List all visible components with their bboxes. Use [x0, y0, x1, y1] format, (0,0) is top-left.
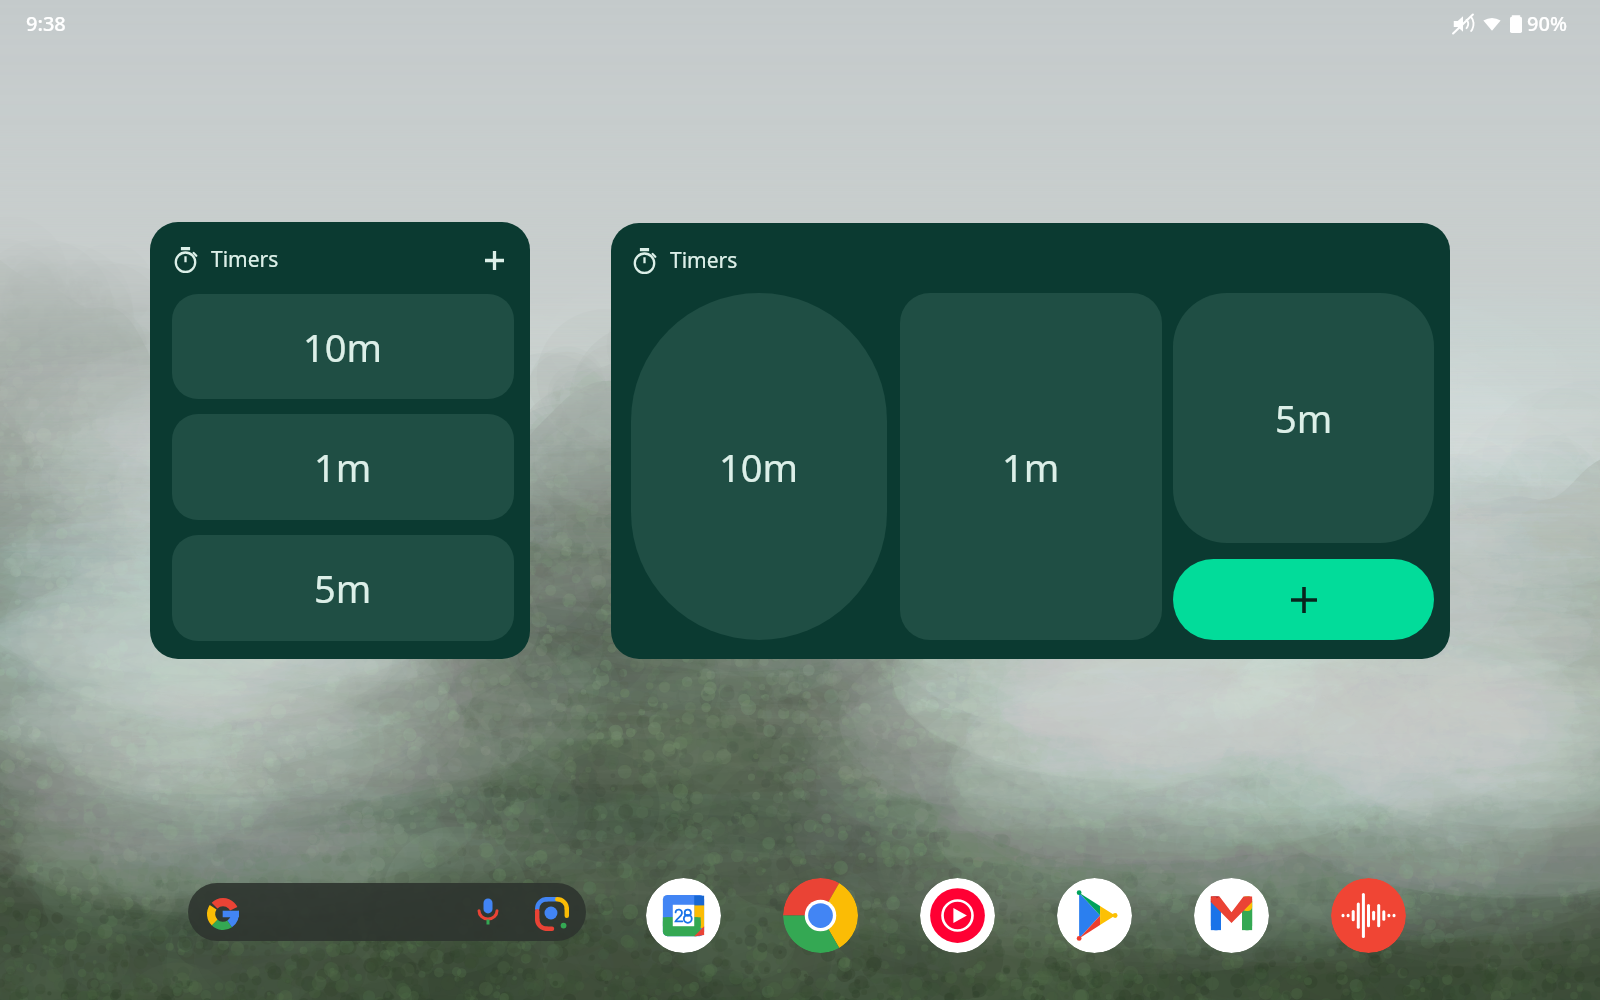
button[interactable]: 1m — [900, 293, 1162, 640]
staticText: 1m — [314, 441, 372, 493]
staticText: 5m — [1275, 392, 1333, 444]
button[interactable]: 10m — [631, 293, 887, 640]
staticText: 9:38 — [26, 10, 66, 37]
staticText: Timers — [211, 245, 279, 274]
staticText: 1m — [1002, 441, 1060, 493]
button[interactable]: 5m — [1173, 293, 1434, 543]
button[interactable]: App — [1057, 878, 1132, 953]
button[interactable]: 1m — [172, 414, 514, 520]
button[interactable]: App — [920, 878, 995, 953]
button[interactable]: 10m — [172, 294, 514, 399]
button[interactable]: Add timer — [1173, 559, 1434, 640]
button[interactable]: 5m — [172, 535, 514, 641]
button[interactable]: App — [646, 878, 721, 953]
button[interactable]: App — [783, 878, 858, 953]
staticText: 10m — [719, 441, 799, 493]
staticText: 5m — [314, 562, 372, 614]
staticText: Timers — [670, 246, 738, 275]
button[interactable]: App — [1194, 878, 1269, 953]
staticText: 10m — [303, 321, 383, 373]
button[interactable]: Search — [188, 883, 586, 941]
button[interactable]: Add timer — [474, 239, 514, 279]
button[interactable]: App — [1331, 878, 1406, 953]
staticText: 90% — [1527, 10, 1567, 37]
